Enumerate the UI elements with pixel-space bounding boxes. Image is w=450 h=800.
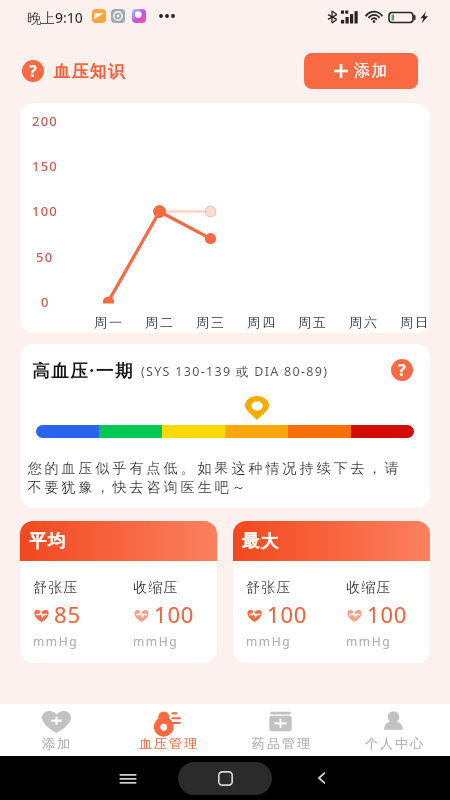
button[interactable]: 最大 [233, 521, 430, 663]
staticText: 100 [367, 599, 408, 629]
staticText: 血压知识 [53, 61, 125, 82]
staticText: 舒张压 [33, 579, 79, 597]
staticText: 晚上9:10 [27, 8, 83, 27]
staticText: 周四 [246, 314, 276, 330]
staticText: 周三 [195, 314, 225, 330]
staticText: 最大 [241, 530, 279, 552]
staticText: 药品管理 [251, 735, 311, 751]
button[interactable]: 帮助 [22, 60, 44, 82]
button[interactable]: 帮助 [391, 359, 413, 381]
staticText: 周一 [93, 314, 123, 330]
staticText: 85 [54, 599, 81, 629]
staticText: 个人中心 [364, 735, 424, 751]
button[interactable]: 添加 [304, 53, 418, 89]
button[interactable]: 药品管理 [224, 704, 337, 756]
staticText: 100 [154, 599, 195, 629]
button[interactable]: 最近任务 [117, 767, 139, 789]
staticText: 您的血压似乎有点低。如果这种情况持续下去，请 [26, 460, 400, 478]
staticText: mmHg [33, 633, 79, 649]
staticText: 50 [36, 248, 54, 266]
staticText: 100 [32, 202, 58, 220]
staticText: (SYS 130-139 或 DIA 80-89) [141, 363, 329, 380]
staticText: 收缩压 [346, 579, 392, 597]
staticText: 周日 [399, 314, 429, 330]
staticText: 不要犹豫，快去咨询医生吧～ [26, 479, 247, 497]
staticText: 周二 [144, 314, 174, 330]
staticText: mmHg [346, 633, 392, 649]
staticText: 收缩压 [133, 579, 179, 597]
button[interactable]: 平均 [20, 521, 217, 663]
button[interactable]: 主页 [178, 762, 272, 795]
button[interactable]: 血压管理 [112, 704, 224, 756]
staticText: 添加 [353, 61, 388, 81]
staticText: mmHg [133, 633, 179, 649]
staticText: 150 [32, 157, 58, 175]
staticText: 200 [32, 112, 58, 130]
button[interactable]: 帮助 [22, 60, 125, 82]
staticText: 高血压·一期 [32, 358, 135, 382]
staticText: mmHg [246, 633, 292, 649]
staticText: 舒张压 [246, 579, 292, 597]
button[interactable]: 个人中心 [337, 704, 450, 756]
staticText: 平均 [28, 530, 66, 552]
staticText: 周五 [297, 314, 327, 330]
staticText: 血压管理 [138, 735, 198, 751]
button[interactable]: 添加 [0, 704, 112, 756]
staticText: ? [29, 60, 37, 82]
staticText: 0 [41, 293, 50, 311]
staticText: ? [398, 359, 406, 381]
button[interactable]: 返回 [312, 768, 332, 788]
staticText: 100 [267, 599, 308, 629]
staticText: 周六 [348, 314, 378, 330]
staticText: 添加 [41, 735, 71, 751]
